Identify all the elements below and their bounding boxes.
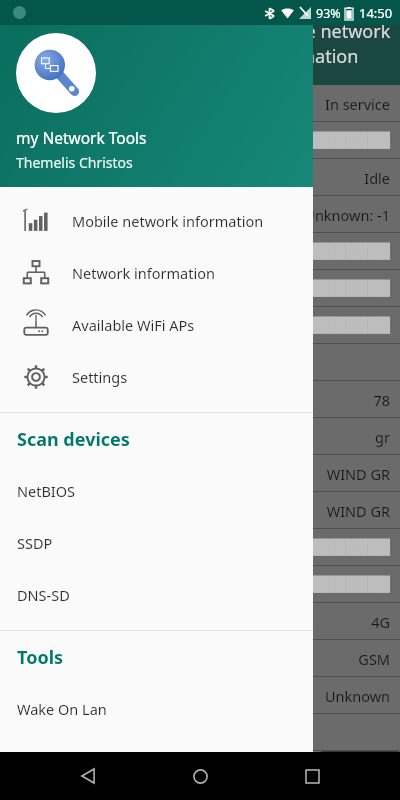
staticText: Wake On Lan <box>17 699 107 719</box>
staticText: my Network Tools <box>16 127 147 148</box>
staticText: Themelis Christos <box>16 153 133 172</box>
staticText: GSM <box>358 649 390 669</box>
staticText: ████████ <box>300 243 390 260</box>
button[interactable]: SSDP <box>0 517 313 569</box>
button[interactable]: Mobile network <box>0 195 313 247</box>
staticText: ███████ <box>311 539 390 556</box>
staticText: 93% <box>316 5 341 22</box>
staticText: SSDP <box>17 533 53 553</box>
staticText: Scan devices <box>17 427 130 452</box>
staticText: 14:50 <box>359 4 393 22</box>
staticText: DNS-SD <box>17 585 70 605</box>
staticText: Unknown <box>324 686 390 706</box>
staticText: Idle <box>364 168 390 188</box>
staticText: Mobile network information <box>258 19 400 69</box>
button[interactable]: Home <box>176 752 224 800</box>
button[interactable]: NetBIOS <box>0 465 313 517</box>
button[interactable]: DNS-SD <box>0 569 313 621</box>
staticText: Network information <box>72 263 215 283</box>
staticText: ΕΓΚΑΤΑΣΤΑΣΗ <box>320 751 400 770</box>
staticText: Settings <box>72 367 128 387</box>
staticText: NetBIOS <box>17 481 76 501</box>
button[interactable]: ΕΓΚΑΤΑΣΤΑΣΗ <box>320 751 400 770</box>
button[interactable]: Settings <box>0 351 313 403</box>
staticText: ███████ <box>311 576 390 593</box>
staticText: In service <box>324 94 390 114</box>
button[interactable]: Recent apps <box>288 752 336 800</box>
button[interactable]: Back <box>64 752 112 800</box>
staticText: WIND GR <box>326 501 390 521</box>
other: Settings <box>23 364 49 390</box>
staticText: gr <box>375 427 390 447</box>
staticText: ████████ <box>300 317 390 334</box>
other: Available WiFi APs <box>23 312 49 338</box>
staticText: ████████ <box>300 132 390 149</box>
staticText: 78 <box>373 390 390 410</box>
staticText: Unknown: -1 <box>304 205 390 225</box>
button[interactable]: Network information <box>0 247 313 299</box>
staticText: WIND GR <box>326 464 390 484</box>
staticText: 4G <box>371 612 390 632</box>
staticText: Available WiFi APs <box>72 315 195 335</box>
staticText: Mobile network information <box>72 211 264 231</box>
staticText: Tools <box>17 645 64 670</box>
other: Mobile network <box>23 208 49 234</box>
other: Network information <box>23 260 49 286</box>
button[interactable]: Available WiFi APs <box>0 299 313 351</box>
staticText: ███████ <box>311 280 390 297</box>
button[interactable]: Wake On Lan <box>0 683 313 735</box>
